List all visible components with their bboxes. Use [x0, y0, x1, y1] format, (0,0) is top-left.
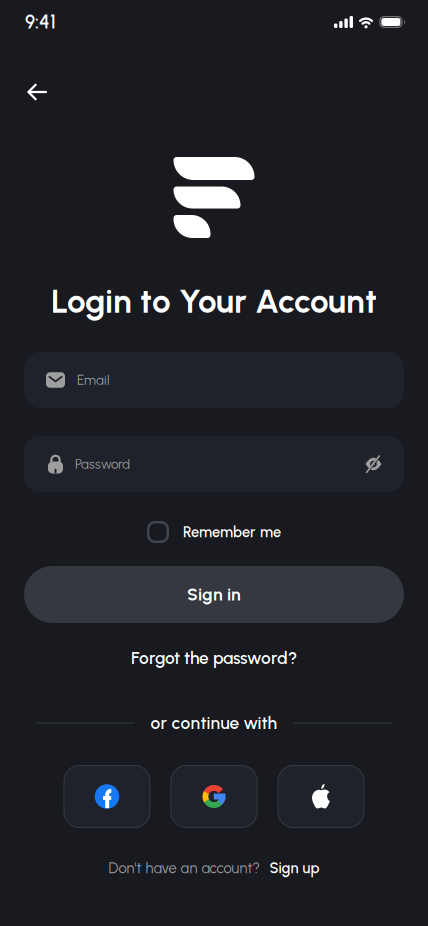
staticText: Sign up [269, 859, 319, 877]
staticText: 9:41 [25, 11, 56, 33]
button[interactable]: Remember me [147, 520, 281, 544]
button[interactable]: Forgot the password? [131, 647, 297, 669]
button[interactable] [170, 765, 257, 828]
button[interactable]: Email [24, 352, 404, 408]
staticText: Don't have an account? [108, 859, 259, 877]
button[interactable] [277, 765, 364, 828]
staticText: Login to Your Account [51, 281, 377, 320]
staticText: Remember me [183, 523, 281, 541]
button[interactable]: Password [24, 436, 404, 492]
staticText: Password [75, 456, 130, 472]
staticText: Email [77, 372, 110, 388]
staticText: Forgot the password? [131, 648, 297, 668]
button[interactable] [0, 84, 47, 100]
staticText: Sign in [187, 584, 241, 605]
button[interactable]: Sign up [269, 859, 319, 877]
button[interactable]: Sign in [24, 566, 404, 623]
button[interactable] [63, 765, 150, 828]
staticText: or continue with [150, 713, 277, 733]
